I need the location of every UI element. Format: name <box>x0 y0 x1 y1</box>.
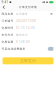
staticText: 商品名称 <box>1 12 13 15</box>
staticText: 交易金额 <box>1 40 13 43</box>
button[interactable]: 立即支付 <box>2 57 53 64</box>
staticText: 开启自动续费服务 <box>1 47 25 50</box>
staticText: 订单支付详情 <box>19 5 37 9</box>
staticText: 订单编号 <box>1 19 13 22</box>
staticText: 支付方式 <box>1 33 13 36</box>
staticText: 会员服务 <box>16 12 28 15</box>
staticText: 9:41 <box>2 0 9 4</box>
staticText: 交易时间 <box>1 26 13 29</box>
staticText: 2024011508 <box>16 19 36 23</box>
staticText: 立即支付 <box>20 58 36 63</box>
button[interactable]: Back <box>0 4 7 10</box>
button[interactable]: Auto renew <box>48 47 54 51</box>
staticText: 微信支付 <box>16 33 28 36</box>
staticText: ¥ 128.00 <box>16 40 30 44</box>
staticText: 01-15 12:30 <box>16 26 35 30</box>
